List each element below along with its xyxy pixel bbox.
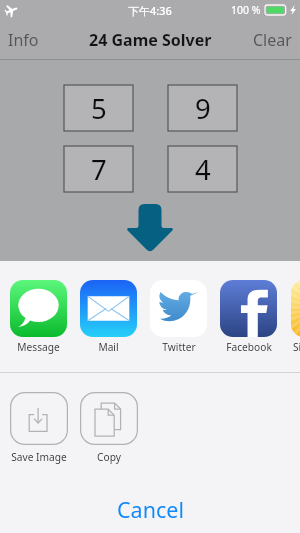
button[interactable]: 5 bbox=[64, 85, 133, 131]
button[interactable]: Clear bbox=[245, 21, 300, 59]
button[interactable]: Mail bbox=[80, 280, 137, 354]
staticText: Info bbox=[8, 29, 39, 51]
staticText: Mail bbox=[98, 340, 119, 354]
staticText: Clear bbox=[253, 29, 292, 51]
button[interactable]: 4 bbox=[168, 146, 237, 192]
staticText: 5 bbox=[91, 90, 107, 127]
staticText: 24 Game Solver bbox=[89, 29, 212, 51]
staticText: Save Image bbox=[11, 450, 67, 464]
staticText: Copy bbox=[97, 450, 121, 464]
button[interactable]: Message bbox=[10, 280, 67, 354]
button[interactable]: Facebook bbox=[220, 280, 277, 354]
staticText: 100 % bbox=[231, 3, 261, 17]
other: Airplane mode bbox=[5, 4, 18, 17]
button[interactable]: 9 bbox=[168, 85, 237, 131]
staticText: 下午4:36 bbox=[128, 3, 172, 18]
button[interactable]: Copy bbox=[80, 392, 138, 464]
staticText: 7 bbox=[91, 151, 107, 188]
staticText: Cancel bbox=[117, 495, 184, 524]
staticText: 9 bbox=[195, 90, 211, 127]
button[interactable]: Sina Weibo bbox=[291, 280, 300, 354]
staticText: Facebook bbox=[226, 340, 272, 354]
button[interactable]: Cancel bbox=[0, 486, 300, 533]
button[interactable]: Twitter bbox=[150, 280, 207, 354]
staticText: Sina Weibo bbox=[293, 340, 300, 354]
button[interactable]: Info bbox=[0, 21, 47, 59]
button[interactable]: 7 bbox=[64, 146, 133, 192]
staticText: 4 bbox=[195, 151, 211, 188]
staticText: Message bbox=[17, 340, 60, 354]
staticText: Twitter bbox=[162, 340, 196, 354]
button[interactable]: Save Image bbox=[10, 392, 68, 464]
